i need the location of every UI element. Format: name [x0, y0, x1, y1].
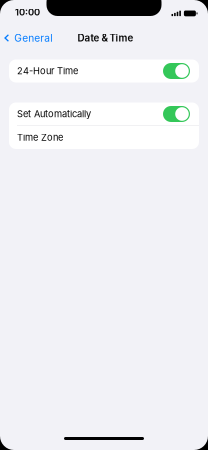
staticText: Time Zone: [17, 132, 63, 143]
staticText: General: [14, 32, 52, 44]
staticText: 10:00: [15, 7, 40, 18]
button[interactable]: Time Zone: [9, 126, 199, 149]
button[interactable]: Set Automatically: [9, 102, 199, 125]
button[interactable]: 24-Hour Time: [9, 59, 199, 82]
button[interactable]: General: [0, 27, 52, 49]
staticText: Date & Time: [78, 32, 134, 44]
staticText: Set Automatically: [17, 108, 91, 120]
staticText: 24-Hour Time: [17, 65, 78, 77]
